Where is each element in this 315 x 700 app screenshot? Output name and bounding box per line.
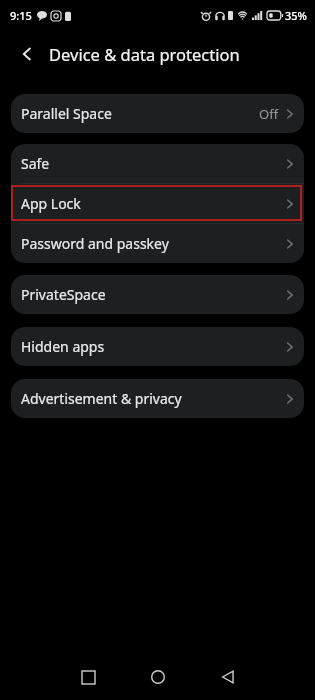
button[interactable]: App Lock: [11, 184, 304, 223]
staticText: Hidden apps: [21, 337, 105, 356]
button[interactable]: PrivateSpace: [11, 275, 304, 314]
staticText: Advertisement & privacy: [21, 389, 182, 408]
staticText: App Lock: [21, 194, 81, 213]
staticText: 9:15: [10, 8, 32, 23]
staticText: Off: [259, 105, 279, 123]
button[interactable]: Safe: [11, 144, 304, 183]
button[interactable]: Advertisement & privacy: [11, 379, 304, 418]
staticText: Password and passkey: [21, 234, 169, 253]
button[interactable]: Password and passkey: [11, 224, 304, 263]
staticText: Device & data protection: [49, 43, 240, 65]
staticText: Parallel Space: [21, 104, 112, 123]
button[interactable]: Parallel Space: [11, 94, 304, 133]
staticText: 35%: [285, 8, 307, 23]
button[interactable]: Back: [10, 37, 44, 71]
button[interactable]: Recent apps: [66, 655, 110, 699]
staticText: Safe: [21, 154, 50, 173]
button[interactable]: Hidden apps: [11, 327, 304, 366]
staticText: PrivateSpace: [21, 285, 106, 304]
button[interactable]: Back: [206, 655, 250, 699]
button[interactable]: Home: [136, 655, 180, 699]
